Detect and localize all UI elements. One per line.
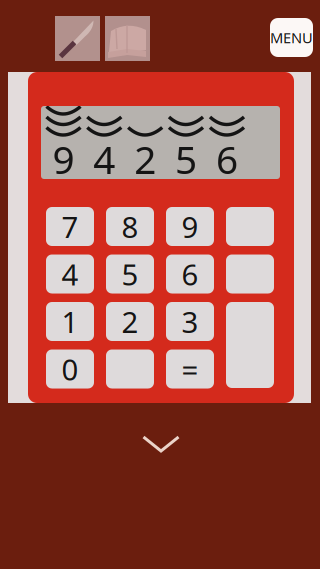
button[interactable] xyxy=(226,302,274,388)
staticText: = xyxy=(181,349,198,388)
button[interactable]: 8 xyxy=(106,207,154,246)
button[interactable]: 9 xyxy=(166,207,214,246)
staticText: MENU xyxy=(270,28,313,47)
button[interactable]: Scroll down xyxy=(140,432,182,458)
staticText: 3 xyxy=(181,302,198,341)
staticText: 2 xyxy=(121,302,138,341)
button[interactable]: 0 xyxy=(46,349,94,388)
staticText: 6 xyxy=(216,133,238,185)
button[interactable]: 2 xyxy=(106,302,154,341)
staticText: 9 xyxy=(52,133,74,185)
button[interactable]: Knife xyxy=(55,16,100,61)
staticText: 9 xyxy=(181,207,198,246)
button[interactable]: 6 xyxy=(166,254,214,293)
staticText: 4 xyxy=(93,133,115,185)
staticText: 2 xyxy=(134,133,156,185)
button[interactable]: 5 xyxy=(106,254,154,293)
staticText: 5 xyxy=(121,254,138,293)
button[interactable]: 4 xyxy=(46,254,94,293)
staticText: 5 xyxy=(175,133,197,185)
staticText: 4 xyxy=(61,254,78,293)
button[interactable]: 1 xyxy=(46,302,94,341)
staticText: 6 xyxy=(181,254,198,293)
button[interactable] xyxy=(106,349,154,388)
staticText: 1 xyxy=(61,302,78,341)
button[interactable]: Bread xyxy=(105,16,150,61)
button[interactable]: 7 xyxy=(46,207,94,246)
staticText: 7 xyxy=(61,207,78,246)
button[interactable] xyxy=(226,254,274,293)
staticText: 8 xyxy=(121,207,138,246)
button[interactable]: = xyxy=(166,349,214,388)
button[interactable]: MENU xyxy=(270,18,313,57)
staticText: 0 xyxy=(61,349,78,388)
button[interactable] xyxy=(226,207,274,246)
button[interactable]: 3 xyxy=(166,302,214,341)
